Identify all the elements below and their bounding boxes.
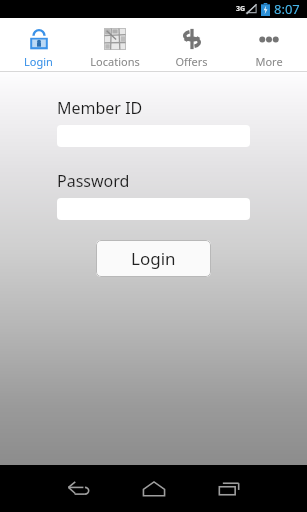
- staticText: Locations: [90, 54, 140, 69]
- button[interactable]: Recent apps: [207, 467, 251, 511]
- button[interactable]: Back: [57, 467, 101, 511]
- staticText: Login: [131, 247, 176, 270]
- other: Login: [28, 27, 50, 51]
- button[interactable]: Login: [96, 240, 211, 277]
- button[interactable]: Home: [132, 467, 176, 511]
- staticText: 8:07: [274, 0, 300, 18]
- staticText: Offers: [175, 54, 208, 69]
- button[interactable]: Locations: [76, 20, 153, 69]
- other: More: [257, 34, 281, 44]
- staticText: Password: [57, 170, 130, 192]
- button[interactable]: Login: [0, 20, 76, 69]
- staticText: Login: [24, 54, 53, 69]
- staticText: More: [255, 54, 283, 69]
- staticText: 3G: [236, 4, 246, 14]
- staticText: Member ID: [57, 97, 143, 119]
- other: Offers: [181, 28, 203, 50]
- other: Locations: [104, 28, 126, 50]
- button[interactable]: Offers: [153, 20, 230, 69]
- button[interactable]: More: [230, 20, 307, 69]
